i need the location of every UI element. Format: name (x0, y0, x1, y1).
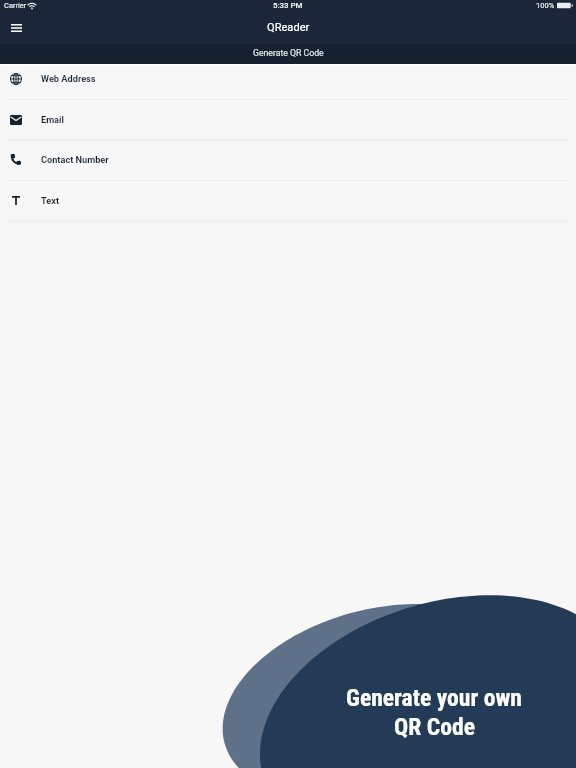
staticText: Generate your own (346, 684, 522, 712)
staticText: Email (41, 114, 64, 125)
staticText: Web Address (41, 73, 96, 84)
staticText: Generate QR Code (253, 48, 324, 58)
staticText: QR Code (394, 713, 475, 741)
staticText: Text (41, 195, 60, 206)
button[interactable]: Generate QR Code (0, 44, 576, 64)
staticText: 5:33 PM (273, 1, 303, 10)
button[interactable]: Web Address (0, 58, 576, 99)
button[interactable]: Open navigation menu (0, 11, 30, 44)
staticText: QReader (267, 21, 310, 34)
staticText: Contact Number (41, 154, 109, 165)
staticText: Carrier (4, 1, 27, 10)
button[interactable]: Contact Number (0, 139, 576, 180)
button[interactable]: Email (0, 99, 576, 140)
staticText: 100% (536, 1, 555, 10)
button[interactable]: Text (0, 180, 576, 221)
